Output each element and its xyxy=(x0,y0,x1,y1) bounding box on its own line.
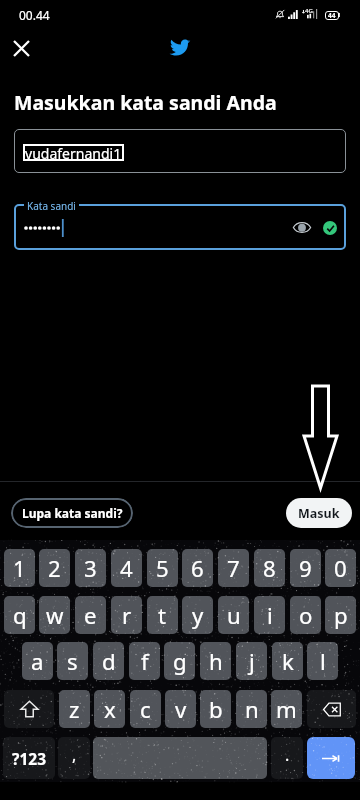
button[interactable]: 6 xyxy=(182,549,213,587)
staticText: 00.44 xyxy=(19,7,50,23)
button[interactable]: g xyxy=(164,642,195,680)
staticText: r xyxy=(122,600,132,630)
button[interactable]: 5 xyxy=(147,549,178,587)
staticText: h xyxy=(209,646,223,676)
button[interactable]: k xyxy=(272,642,303,680)
staticText: ?123 xyxy=(12,748,46,769)
button[interactable]: b xyxy=(200,690,231,728)
button[interactable]: v xyxy=(165,690,196,728)
button[interactable]: Space xyxy=(93,737,267,779)
button[interactable]: ?123 xyxy=(3,737,55,779)
staticText: p xyxy=(334,600,348,630)
button[interactable]: 1 xyxy=(4,549,35,587)
button[interactable]: Masuk xyxy=(286,498,352,528)
staticText: Masuk xyxy=(298,505,340,522)
staticText: Masukkan kata sandi Anda xyxy=(14,89,277,116)
button[interactable]: e xyxy=(75,596,106,634)
button[interactable]: 0 xyxy=(325,549,356,587)
staticText: 2 xyxy=(48,553,61,583)
button[interactable]: s xyxy=(57,642,88,680)
staticText: v xyxy=(175,694,187,724)
button[interactable]: yudafernandi1 xyxy=(14,129,346,173)
staticText: g xyxy=(173,646,187,676)
staticText: e xyxy=(84,600,97,630)
staticText: z xyxy=(69,694,80,724)
staticText: m xyxy=(276,694,297,724)
staticText: 9 xyxy=(299,553,312,583)
staticText: 7 xyxy=(227,553,240,583)
staticText: Kata sandi xyxy=(27,199,76,213)
staticText: a xyxy=(31,646,44,676)
staticText: Lupa kata sandi? xyxy=(22,505,123,521)
staticText: d xyxy=(102,646,116,676)
button[interactable]: o xyxy=(290,596,321,634)
button[interactable]: n xyxy=(236,690,267,728)
staticText: x xyxy=(104,694,116,724)
button[interactable]: Shift xyxy=(4,690,54,728)
staticText: s xyxy=(67,646,78,676)
staticText: q xyxy=(13,600,27,630)
button[interactable]: q xyxy=(4,596,35,634)
button[interactable]: c xyxy=(130,690,161,728)
staticText: w xyxy=(46,600,64,630)
staticText: t xyxy=(158,600,167,630)
button[interactable]: . xyxy=(271,737,303,779)
staticText: , xyxy=(72,744,77,766)
staticText: n xyxy=(245,694,259,724)
staticText: b xyxy=(209,694,223,724)
button[interactable]: 9 xyxy=(290,549,321,587)
staticText: 44 xyxy=(328,11,336,20)
staticText: y xyxy=(192,600,204,630)
button[interactable]: t xyxy=(147,596,178,634)
button[interactable]: h xyxy=(200,642,231,680)
staticText: u xyxy=(227,600,241,630)
staticText: 8 xyxy=(263,553,276,583)
button[interactable]: z xyxy=(59,690,90,728)
staticText: 4G xyxy=(305,7,313,15)
button[interactable]: Close xyxy=(3,30,39,66)
button[interactable]: d xyxy=(93,642,124,680)
button[interactable]: 4 xyxy=(111,549,142,587)
staticText: 4 xyxy=(120,553,133,583)
staticText: j xyxy=(249,646,255,676)
button[interactable]: a xyxy=(22,642,53,680)
button[interactable]: Show password xyxy=(288,213,316,241)
staticText: 0 xyxy=(334,553,347,583)
button[interactable]: 2 xyxy=(39,549,70,587)
button[interactable]: i xyxy=(254,596,285,634)
staticText: k xyxy=(282,646,294,676)
button[interactable] xyxy=(14,204,346,250)
button[interactable]: l xyxy=(307,642,338,680)
button[interactable]: 8 xyxy=(254,549,285,587)
staticText: c xyxy=(140,694,151,724)
staticText: l xyxy=(320,646,326,676)
button[interactable]: 7 xyxy=(218,549,249,587)
button[interactable]: Lupa kata sandi? xyxy=(11,498,133,528)
button[interactable]: m xyxy=(271,690,302,728)
staticText: 3 xyxy=(84,553,97,583)
button[interactable]: , xyxy=(58,737,90,779)
button[interactable]: Backspace xyxy=(307,690,356,728)
staticText: 6 xyxy=(191,553,204,583)
button[interactable]: j xyxy=(236,642,267,680)
button[interactable]: p xyxy=(325,596,356,634)
button[interactable]: w xyxy=(39,596,70,634)
staticText: f xyxy=(141,646,149,676)
button[interactable]: Password valid xyxy=(323,221,337,235)
staticText: i xyxy=(267,600,273,630)
button[interactable]: y xyxy=(182,596,213,634)
button[interactable]: x xyxy=(94,690,125,728)
button[interactable]: u xyxy=(218,596,249,634)
button[interactable]: r xyxy=(111,596,142,634)
staticText: 1 xyxy=(13,553,26,583)
staticText: 5 xyxy=(156,553,169,583)
button[interactable]: Enter xyxy=(307,737,355,779)
button[interactable]: 3 xyxy=(75,549,106,587)
staticText: o xyxy=(299,600,313,630)
button[interactable]: f xyxy=(129,642,160,680)
staticText: yudafernandi1 xyxy=(25,144,122,161)
staticText: . xyxy=(285,744,290,766)
